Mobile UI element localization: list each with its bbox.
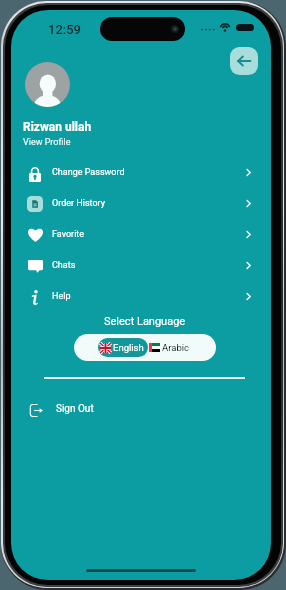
staticText: Sign Out <box>56 403 94 415</box>
staticText: English <box>113 342 144 353</box>
button[interactable]: Rizwan ullah <box>23 120 92 148</box>
button[interactable]: Favorite <box>11 219 271 250</box>
staticText: Select Language <box>104 315 186 328</box>
staticText: Order History <box>52 198 105 209</box>
button[interactable]: Change Password <box>11 157 271 188</box>
button[interactable]: Help <box>11 281 271 312</box>
staticText: Change Password <box>52 167 125 178</box>
staticText: Favorite <box>52 229 85 240</box>
button[interactable]: Profile picture <box>25 62 70 107</box>
button[interactable]: English <box>98 338 148 357</box>
staticText: Rizwan ullah <box>23 120 92 134</box>
staticText: 12:59 <box>48 22 81 37</box>
button[interactable]: Sign Out <box>30 399 100 419</box>
staticText: Chats <box>52 260 76 271</box>
button[interactable]: Back <box>230 47 258 75</box>
staticText: Arabic <box>162 342 190 353</box>
button[interactable]: Order History <box>11 188 271 219</box>
staticText: View Profile <box>23 137 71 148</box>
staticText: Help <box>52 291 71 302</box>
button[interactable]: Arabic <box>149 338 190 357</box>
button[interactable]: Chats <box>11 250 271 281</box>
